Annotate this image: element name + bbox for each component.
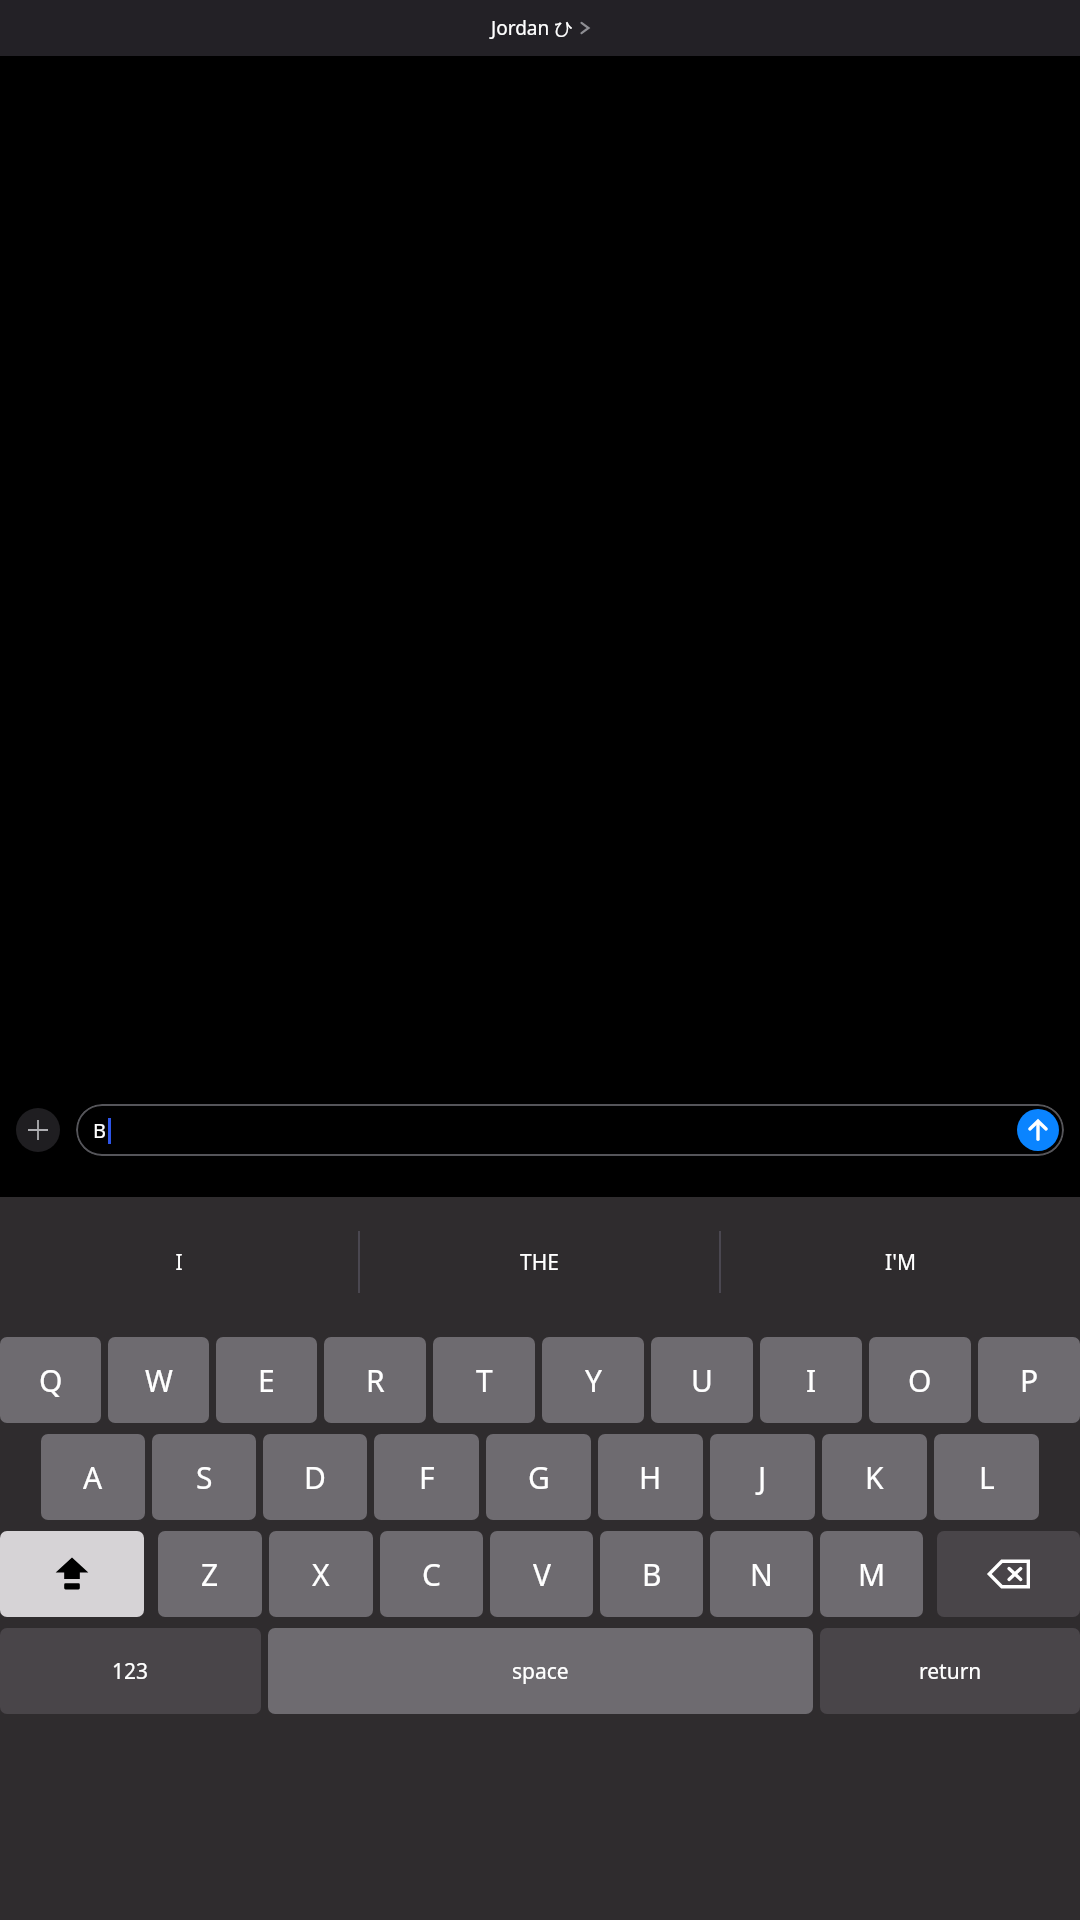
button[interactable]: D	[263, 1434, 367, 1520]
button[interactable]: K	[822, 1434, 927, 1520]
button[interactable]: V	[490, 1531, 593, 1617]
button[interactable]: F	[374, 1434, 479, 1520]
button[interactable]: I'M	[721, 1197, 1080, 1327]
staticText: O	[908, 1360, 932, 1401]
staticText: E	[258, 1360, 275, 1401]
button[interactable]: B	[600, 1531, 703, 1617]
button[interactable]: Send	[1017, 1109, 1059, 1151]
button[interactable]: J	[710, 1434, 815, 1520]
button[interactable]: space	[268, 1628, 813, 1714]
staticText: J	[758, 1457, 767, 1498]
button[interactable]: I	[760, 1337, 862, 1423]
staticText: B	[642, 1554, 662, 1595]
staticText: Q	[39, 1360, 63, 1401]
button[interactable]: E	[216, 1337, 317, 1423]
staticText: return	[919, 1657, 982, 1686]
staticText: T	[476, 1360, 493, 1401]
staticText: THE	[520, 1248, 559, 1277]
button[interactable]: 123	[0, 1628, 261, 1714]
button[interactable]: Y	[542, 1337, 644, 1423]
staticText: I	[806, 1360, 817, 1401]
button[interactable]: I	[0, 1197, 358, 1327]
button[interactable]: G	[486, 1434, 591, 1520]
button[interactable]: Shift	[0, 1531, 144, 1617]
button[interactable]: R	[324, 1337, 426, 1423]
staticText: R	[366, 1360, 385, 1401]
button[interactable]: O	[869, 1337, 971, 1423]
staticText: N	[750, 1554, 773, 1595]
other: Contact details	[580, 19, 590, 37]
button[interactable]: Backspace	[937, 1531, 1080, 1617]
button[interactable]: H	[598, 1434, 703, 1520]
button[interactable]: P	[978, 1337, 1080, 1423]
staticText: L	[979, 1457, 995, 1498]
button[interactable]: T	[433, 1337, 535, 1423]
button[interactable]: B	[76, 1104, 1064, 1156]
button[interactable]: U	[651, 1337, 753, 1423]
staticText: S	[196, 1457, 213, 1498]
staticText: I'M	[885, 1248, 916, 1277]
button[interactable]: A	[41, 1434, 145, 1520]
staticText: M	[858, 1554, 886, 1595]
button[interactable]: S	[152, 1434, 256, 1520]
staticText: H	[639, 1457, 662, 1498]
staticText: U	[691, 1360, 713, 1401]
staticText: W	[145, 1360, 173, 1401]
staticText: C	[422, 1554, 441, 1595]
button[interactable]: return	[820, 1628, 1080, 1714]
staticText: D	[304, 1457, 326, 1498]
button[interactable]: X	[269, 1531, 373, 1617]
staticText: X	[312, 1554, 330, 1595]
button[interactable]: Add attachment	[16, 1108, 60, 1152]
staticText: P	[1020, 1360, 1039, 1401]
staticText: Z	[201, 1554, 219, 1595]
staticText: F	[419, 1457, 435, 1498]
staticText: A	[83, 1457, 103, 1498]
staticText: G	[528, 1457, 550, 1498]
button[interactable]: Jordan ひ	[491, 15, 590, 41]
staticText: I	[175, 1248, 183, 1277]
button[interactable]: C	[380, 1531, 483, 1617]
staticText: 123	[112, 1657, 149, 1686]
button[interactable]: THE	[360, 1197, 719, 1327]
button[interactable]: N	[710, 1531, 813, 1617]
staticText: K	[865, 1457, 884, 1498]
button[interactable]: Z	[158, 1531, 262, 1617]
staticText: space	[512, 1657, 569, 1686]
staticText: Y	[585, 1360, 602, 1401]
button[interactable]: Q	[0, 1337, 101, 1423]
button[interactable]: M	[820, 1531, 923, 1617]
button[interactable]: L	[934, 1434, 1039, 1520]
staticText: B	[93, 1117, 106, 1144]
button[interactable]: W	[108, 1337, 209, 1423]
staticText: V	[533, 1554, 551, 1595]
staticText: Jordan ひ	[491, 15, 574, 41]
